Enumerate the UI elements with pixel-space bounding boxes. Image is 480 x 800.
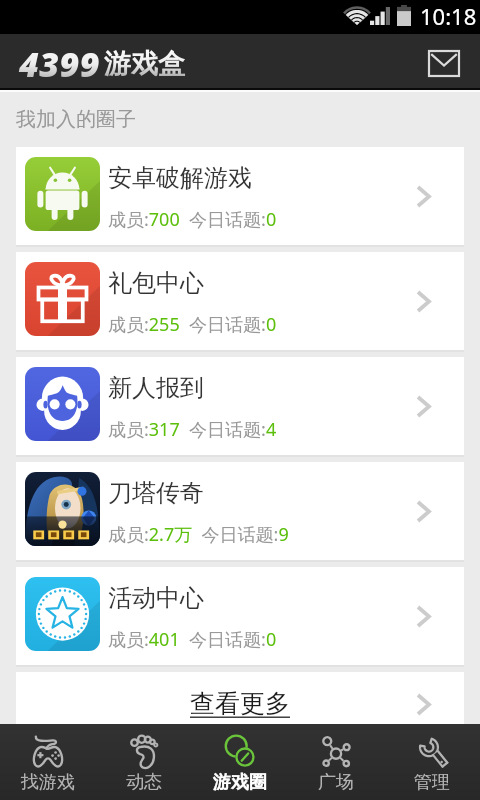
staticText: 新人报到 [108,373,204,403]
staticText: 成员:401 今日话题:0 [108,627,277,652]
button[interactable]: 游戏圈 [192,724,288,800]
staticText: 刀塔传奇 [108,478,204,508]
staticText: 动态 [126,771,162,794]
staticText: 广场 [318,771,354,794]
button[interactable]: 找游戏 [0,724,96,800]
staticText: 我加入的圈子 [16,107,136,132]
staticText: 安卓破解游戏 [108,163,252,193]
staticText: 查看更多 [190,688,290,719]
staticText: 管理 [414,771,450,794]
staticText: 找游戏 [21,771,75,794]
staticText: 4399 [19,41,100,87]
button[interactable]: 安卓破解游戏 [16,147,464,245]
button[interactable]: 活动中心 [16,567,464,665]
staticText: 游戏圈 [213,771,267,794]
staticText: 成员:2.7万 今日话题:9 [108,522,289,547]
button[interactable]: 管理 [384,724,480,800]
staticText: 成员:255 今日话题:0 [108,312,277,337]
button[interactable]: 新人报到 [16,357,464,455]
staticText: 成员:317 今日话题:4 [108,417,277,442]
button[interactable]: 礼包中心 [16,252,464,350]
button[interactable]: 刀塔传奇 [16,462,464,560]
staticText: 活动中心 [108,583,204,613]
button[interactable]: 查看更多 [16,672,464,770]
staticText: 10:18 [420,1,477,31]
staticText: 成员:700 今日话题:0 [108,207,277,232]
staticText: 礼包中心 [108,268,204,298]
button[interactable]: 动态 [96,724,192,800]
staticText: 游戏盒 [104,47,185,81]
button[interactable]: 广场 [288,724,384,800]
button[interactable]: Messages [422,41,466,85]
